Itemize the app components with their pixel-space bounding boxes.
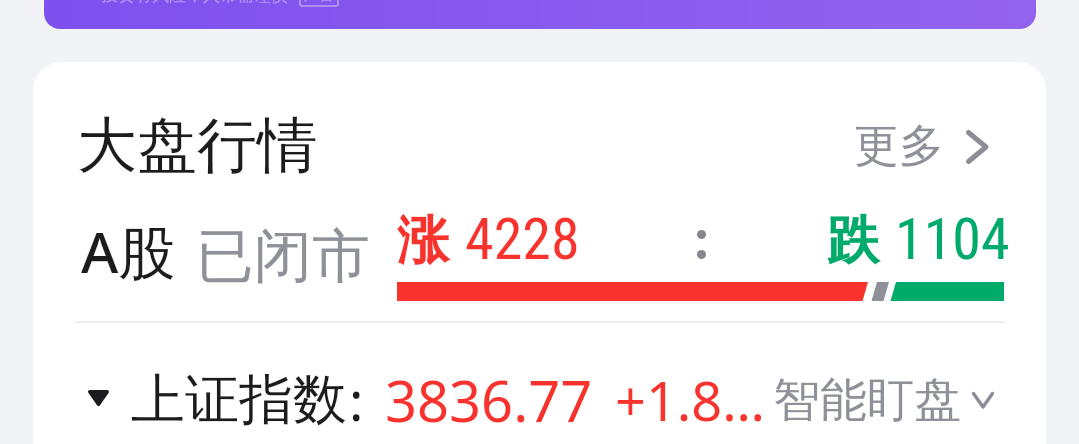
staticText: 1104 [895, 205, 1010, 273]
staticText: +1.8… [615, 363, 765, 437]
button[interactable]: 更多 [854, 118, 989, 175]
button[interactable]: 上证指数 [88, 362, 1005, 438]
staticText: 已闭市 [196, 220, 370, 293]
button[interactable]: A股 [81, 212, 176, 288]
staticText: 智能盯盘 [773, 371, 961, 430]
staticText: 3836.77 [385, 362, 593, 438]
staticText: 投资有风险，入市需谨慎 [101, 0, 288, 6]
staticText: 跌 [827, 208, 879, 274]
staticText: 涨 [397, 208, 449, 274]
staticText: 更多 [854, 118, 944, 175]
staticText: 大盘行情 [77, 108, 317, 184]
staticText: 4228 [465, 205, 580, 273]
staticText: A股 [81, 212, 176, 288]
other: Expand [971, 391, 995, 410]
staticText: 上证指数 [131, 366, 347, 434]
button[interactable]: 投资有风险，入市需谨慎 [44, 0, 1036, 29]
other: More [966, 130, 989, 164]
staticText: 广告 [304, 0, 334, 5]
staticText: : [349, 363, 364, 437]
